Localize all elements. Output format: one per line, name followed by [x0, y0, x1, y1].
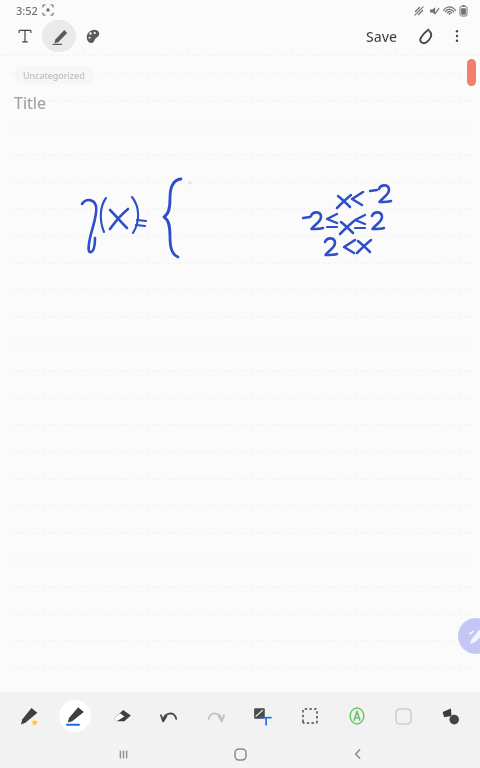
button[interactable]: Save — [360, 23, 404, 50]
staticText: Title — [14, 92, 46, 114]
button[interactable]: Pen settings — [458, 618, 480, 654]
button[interactable]: Favorite pen — [6, 692, 52, 740]
button[interactable]: Recents — [65, 740, 182, 768]
button[interactable]: Drawing mode — [76, 20, 110, 52]
staticText: 3:52 — [16, 3, 38, 18]
button[interactable]: Back — [299, 740, 416, 768]
button[interactable]: Text mode — [8, 20, 42, 52]
button[interactable]: Undo — [145, 692, 192, 740]
button[interactable]: Eraser — [98, 692, 145, 740]
button[interactable]: Auto shape — [333, 692, 380, 740]
button[interactable]: Attach — [410, 20, 442, 52]
button[interactable]: Select — [286, 692, 333, 740]
button[interactable]: Pen — [52, 692, 98, 740]
button[interactable]: Canvas — [380, 692, 427, 740]
button[interactable]: Handwriting mode — [42, 20, 76, 52]
button[interactable]: Scroll position — [467, 59, 476, 86]
button[interactable]: Convert to text — [239, 692, 286, 740]
staticText: Save — [366, 27, 398, 46]
button[interactable]: Ink color — [427, 692, 474, 740]
button[interactable]: Redo — [192, 692, 239, 740]
button[interactable]: More options — [442, 21, 472, 51]
button[interactable]: Home — [182, 740, 299, 768]
staticText: Uncategorized — [23, 69, 85, 81]
button[interactable]: Uncategorized — [14, 66, 94, 84]
